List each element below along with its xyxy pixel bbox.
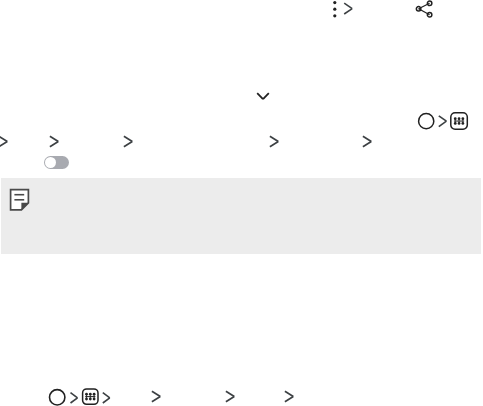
button[interactable]: Link	[358, 134, 377, 149]
button[interactable]: Open apps	[416, 110, 474, 132]
button[interactable]: Link	[265, 134, 284, 149]
button[interactable]: Link	[147, 389, 166, 404]
button[interactable]: Link	[221, 389, 240, 404]
button[interactable]: Link	[280, 389, 299, 404]
button[interactable]: Open apps	[47, 386, 113, 406]
button[interactable]: More options	[329, 0, 357, 20]
button[interactable]: Link	[45, 134, 64, 149]
button[interactable]: Link	[0, 134, 13, 149]
button[interactable]: Note	[1, 178, 481, 254]
button[interactable]: Link	[119, 134, 138, 149]
button[interactable]: Share	[413, 0, 435, 19]
button[interactable]: Toggle	[44, 156, 69, 169]
button[interactable]: Expand	[252, 88, 274, 104]
